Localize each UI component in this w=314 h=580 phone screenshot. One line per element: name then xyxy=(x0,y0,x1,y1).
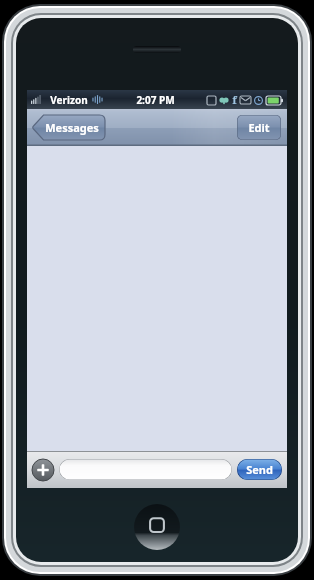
staticText: 2:07 PM xyxy=(136,93,175,107)
staticText: Edit xyxy=(248,120,270,135)
button[interactable]: Add attachment xyxy=(32,459,54,481)
staticText: Send xyxy=(246,462,273,477)
staticText: Verizon xyxy=(50,93,88,107)
button[interactable]: Messages xyxy=(32,115,105,140)
button[interactable]: Message text field xyxy=(59,459,232,480)
button[interactable]: Send xyxy=(237,459,282,480)
button[interactable]: Home xyxy=(134,504,180,550)
staticText: f xyxy=(232,93,237,107)
staticText: Messages xyxy=(45,120,99,135)
button[interactable]: Edit xyxy=(237,115,281,140)
